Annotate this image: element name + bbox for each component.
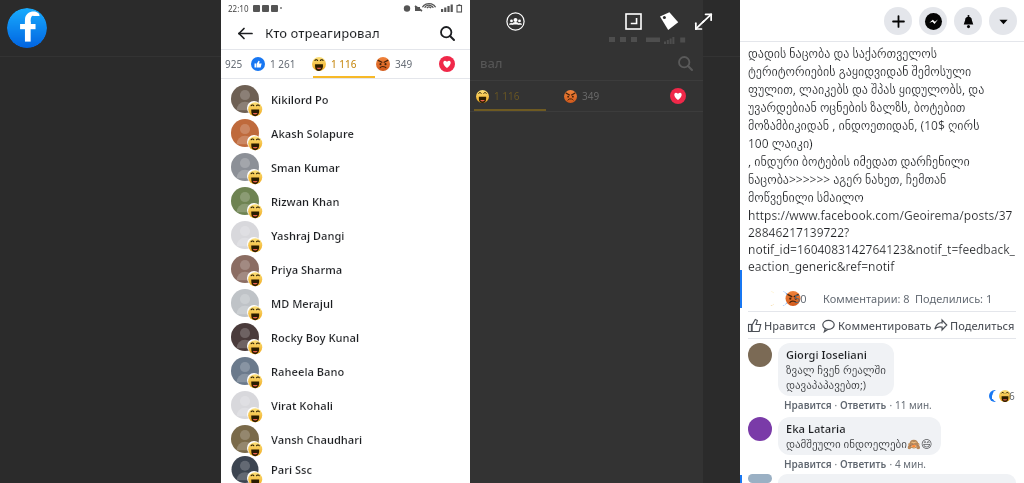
- button[interactable]: Нравится: [748, 314, 816, 336]
- button[interactable]: 1 116: [304, 50, 364, 78]
- button[interactable]: Gallery: [618, 6, 648, 36]
- staticText: ·: [832, 398, 840, 412]
- button[interactable]: Love: [424, 50, 470, 78]
- staticText: Поделиться: [950, 318, 1015, 333]
- staticText: Комментировать: [838, 318, 932, 333]
- button[interactable]: Raheela Bano: [221, 354, 470, 388]
- staticText: MD Merajul: [271, 296, 334, 311]
- staticText: Комментарии: 8: [823, 291, 910, 306]
- button[interactable]: Priya Sharma: [221, 252, 470, 286]
- button[interactable]: Поделиться: [934, 314, 1015, 336]
- button[interactable]: Ответить: [840, 457, 887, 471]
- staticText: 4 мин.: [895, 457, 927, 471]
- button[interactable]: Back: [231, 20, 257, 46]
- button[interactable]: Expand: [688, 6, 718, 36]
- staticText: Rizwan Khan: [271, 194, 340, 209]
- button[interactable]: Giorgi Ioseliani: [778, 343, 894, 396]
- staticText: Yashraj Dangi: [271, 228, 345, 243]
- staticText: ზვალ ჩვენ რეალში: [786, 362, 886, 377]
- staticText: 28846217139722?: [748, 224, 850, 240]
- button[interactable]: Group: [500, 6, 530, 36]
- staticText: უვარდებიან ოცნების ზალზს, ბოტებით: [748, 99, 966, 115]
- button[interactable]: Search: [434, 20, 460, 46]
- staticText: 1 116: [494, 89, 520, 103]
- button[interactable]: Messenger: [919, 7, 947, 35]
- button[interactable]: MD Merajul: [221, 286, 470, 320]
- staticText: დადის ნაცობა და საქართველოს: [748, 45, 937, 61]
- staticText: 100 ლაიკი): [748, 135, 813, 151]
- staticText: ტერიტორიების გაყიდვიდან შემოსული: [748, 63, 972, 79]
- staticText: 1 261: [270, 57, 296, 71]
- button[interactable]: Tag: [654, 6, 684, 36]
- staticText: 6: [1009, 389, 1015, 403]
- staticText: ·: [832, 457, 840, 471]
- staticText: Eka Lataria: [786, 421, 846, 436]
- button[interactable]: Kikilord Po: [221, 82, 470, 116]
- staticText: Vansh Chaudhari: [271, 432, 363, 447]
- staticText: 11 мин.: [895, 398, 932, 412]
- button[interactable]: Yashraj Dangi: [221, 218, 470, 252]
- staticText: Akash Solapure: [271, 126, 354, 141]
- button[interactable]: Нравится: [784, 457, 832, 471]
- staticText: მოწვენილი სმაილო: [748, 189, 864, 205]
- button[interactable]: Facebook: [7, 8, 47, 48]
- staticText: https://www.facebook.com/Geoirema/posts/…: [748, 207, 1013, 223]
- staticText: დავაპაპავებთ;): [786, 377, 867, 392]
- staticText: Raheela Bano: [271, 364, 345, 379]
- staticText: 349: [582, 89, 600, 103]
- staticText: notif_id=1604083142764123&notif_t=feedba…: [748, 241, 1018, 257]
- button[interactable]: Eka Lataria: [778, 417, 941, 455]
- button[interactable]: Notifications: [954, 7, 982, 35]
- button[interactable]: Нравится: [784, 398, 832, 412]
- staticText: Кто отреагировал: [265, 24, 380, 42]
- staticText: 925: [225, 57, 243, 71]
- button[interactable]: Vansh Chaudhari: [221, 422, 470, 456]
- staticText: Pari Ssc: [271, 462, 312, 477]
- button[interactable]: Pari Ssc: [221, 456, 470, 483]
- staticText: Kikilord Po: [271, 92, 329, 107]
- staticText: ფულით, ლაიკებს და შპას ყიდულობს, და: [748, 81, 985, 97]
- staticText: вал: [480, 54, 503, 72]
- staticText: Поделились: 1: [915, 291, 993, 306]
- staticText: Rocky Boy Kunal: [271, 330, 360, 345]
- button[interactable]: Virat Kohali: [221, 388, 470, 422]
- staticText: მოზამბიკიდან , ინდოეთიდან, (10$ ღირს: [748, 117, 980, 133]
- staticText: ·: [887, 457, 895, 471]
- staticText: Sman Kumar: [271, 160, 340, 175]
- staticText: დამშეული ინდოელები🙈😄: [786, 436, 933, 451]
- staticText: eaction_generic&ref=notif: [748, 258, 895, 274]
- staticText: ·: [887, 398, 895, 412]
- button[interactable]: Sman Kumar: [221, 150, 470, 184]
- button[interactable]: Create: [884, 7, 912, 35]
- button[interactable]: Menu: [989, 7, 1017, 35]
- button[interactable]: Ответить: [840, 398, 887, 412]
- button[interactable]: Rizwan Khan: [221, 184, 470, 218]
- staticText: ნაცობა>>>>>> აგერ ნახეთ, ჩემთან: [748, 171, 947, 187]
- staticText: Giorgi Ioseliani: [786, 347, 867, 362]
- staticText: 349: [395, 57, 413, 71]
- button[interactable]: Rocky Boy Kunal: [221, 320, 470, 354]
- staticText: Virat Kohali: [271, 398, 333, 413]
- staticText: Нравится: [764, 318, 816, 333]
- button[interactable]: Комментировать: [822, 314, 932, 336]
- staticText: 22:10: [228, 3, 249, 14]
- staticText: , ინდური ბოტების იმედათ დარჩენილი: [748, 153, 970, 169]
- staticText: 1 116: [331, 57, 357, 71]
- staticText: Priya Sharma: [271, 262, 343, 277]
- staticText: 50: [794, 291, 807, 306]
- button[interactable]: 1 261: [243, 50, 304, 78]
- button[interactable]: Akash Solapure: [221, 116, 470, 150]
- button[interactable]: 349: [364, 50, 424, 78]
